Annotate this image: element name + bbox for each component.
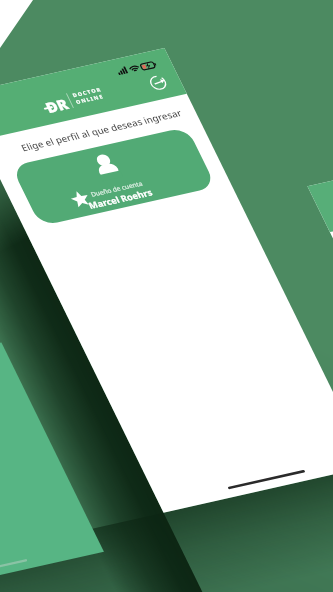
button[interactable]: Elige el perfil al que deseas ingresar bbox=[0, 0, 333, 592]
